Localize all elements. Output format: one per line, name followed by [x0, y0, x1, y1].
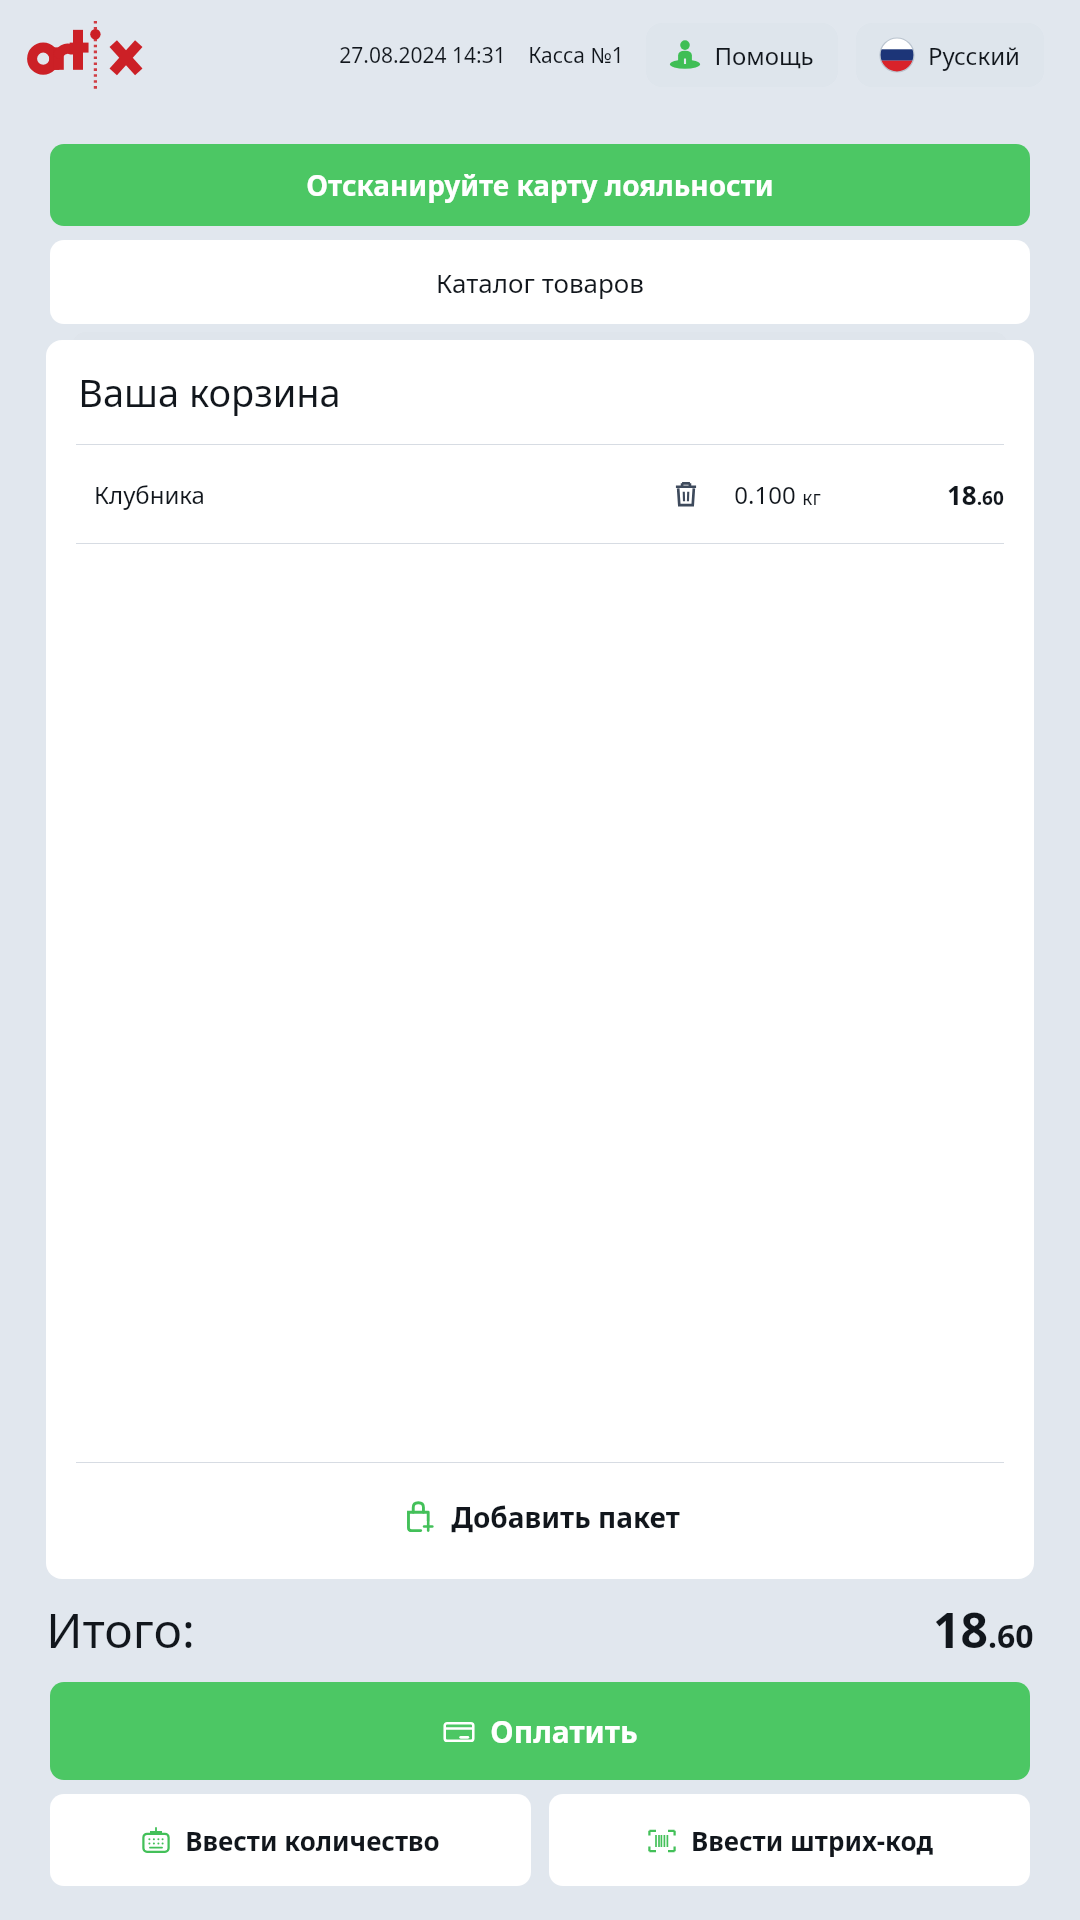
- button[interactable]: Оплатить: [50, 1682, 1030, 1780]
- staticText: Добавить пакет: [451, 1498, 680, 1536]
- staticText: 0.100: [734, 478, 796, 511]
- button[interactable]: Добавить пакет: [46, 1463, 1034, 1571]
- staticText: 18.60: [933, 1597, 1034, 1662]
- staticText: 27.08.2024 14:31: [339, 41, 506, 70]
- staticText: Каталог товаров: [436, 265, 644, 300]
- button[interactable]: Ввести количество: [50, 1794, 531, 1886]
- button[interactable]: Отсканируйте карту лояльности: [50, 144, 1030, 226]
- staticText: Оплатить: [490, 1711, 638, 1752]
- button[interactable]: Русский: [856, 23, 1044, 87]
- staticText: Ваша корзина: [78, 366, 341, 418]
- staticText: Помощь: [714, 39, 814, 72]
- button[interactable]: Ввести штрих-код: [549, 1794, 1030, 1886]
- staticText: Клубника: [94, 478, 205, 511]
- staticText: 18.60: [947, 477, 1004, 512]
- button[interactable]: Удалить: [660, 468, 712, 520]
- button[interactable]: Каталог товаров: [50, 240, 1030, 324]
- staticText: Отсканируйте карту лояльности: [306, 166, 774, 204]
- staticText: Ввести штрих-код: [691, 1823, 933, 1858]
- button[interactable]: Клубника: [46, 445, 1034, 543]
- staticText: Касса №1: [528, 41, 624, 70]
- button[interactable]: Помощь: [646, 23, 838, 87]
- staticText: кг: [802, 485, 821, 511]
- staticText: Итого:: [46, 1597, 195, 1662]
- staticText: Ввести количество: [185, 1823, 440, 1858]
- staticText: Русский: [928, 39, 1020, 72]
